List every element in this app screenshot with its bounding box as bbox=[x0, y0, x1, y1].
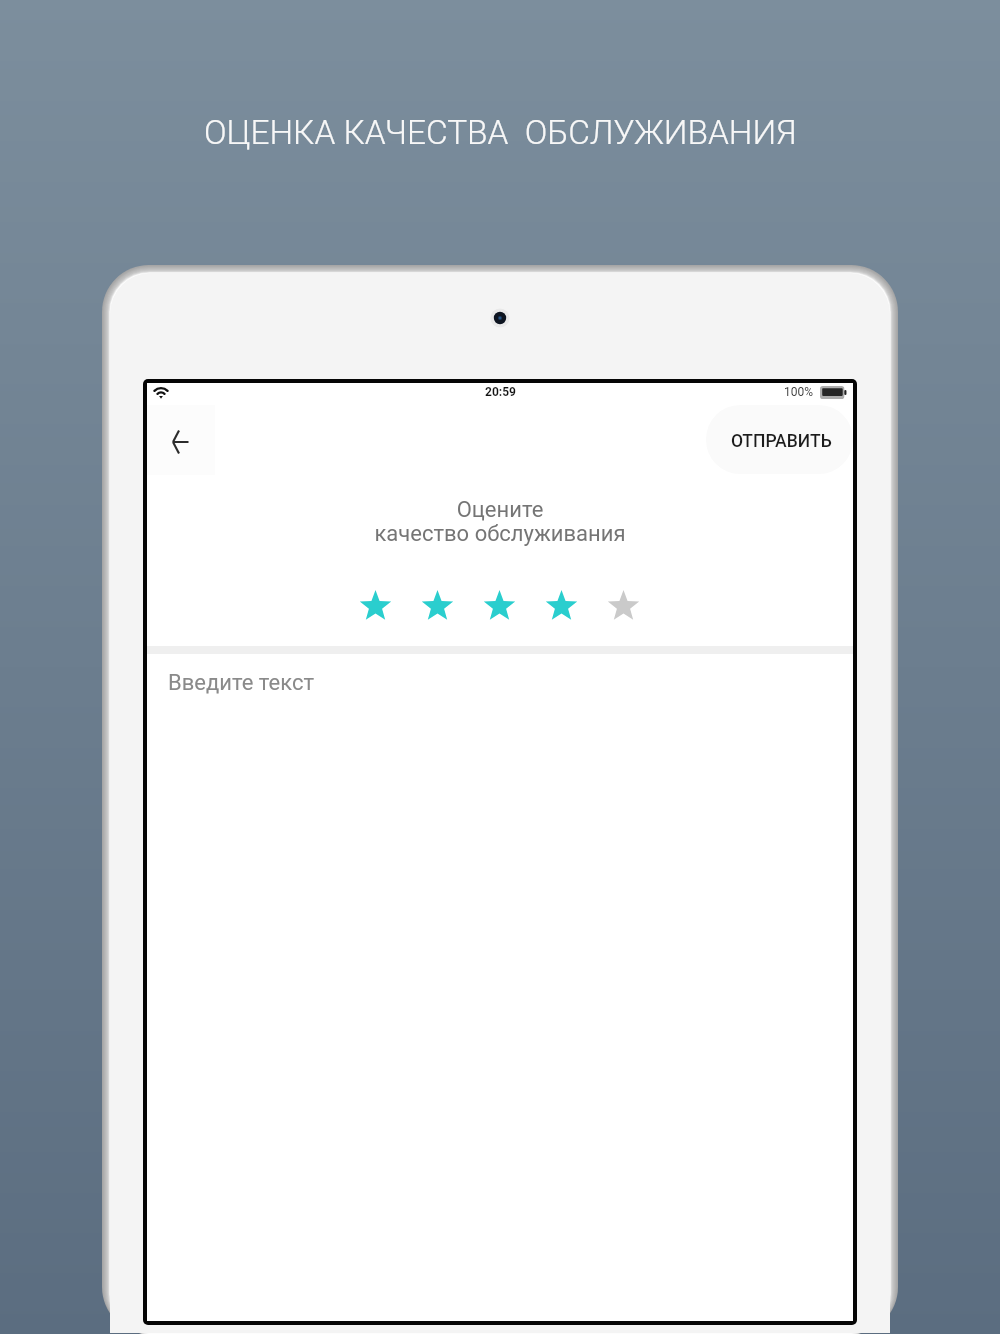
staticText: ОЦЕНКА КАЧЕСТВА ОБСЛУЖИВАНИЯ bbox=[204, 113, 797, 152]
staticText: ОТПРАВИТЬ bbox=[731, 431, 832, 452]
button[interactable]: Back bbox=[147, 405, 215, 475]
staticText: Оцените качество обслуживания bbox=[374, 497, 626, 546]
button[interactable]: Rate 5 stars bbox=[592, 573, 654, 639]
button[interactable]: Rate 4 stars bbox=[530, 573, 592, 639]
button[interactable]: Rate 3 stars bbox=[468, 573, 530, 639]
button[interactable]: Rate 1 stars bbox=[344, 573, 406, 639]
staticText: 20:59 bbox=[485, 385, 516, 399]
button[interactable]: Rate 2 stars bbox=[406, 573, 468, 639]
staticText: Введите текст bbox=[168, 670, 314, 696]
staticText: 100% bbox=[784, 385, 814, 399]
button[interactable]: ОТПРАВИТЬ bbox=[706, 405, 853, 474]
